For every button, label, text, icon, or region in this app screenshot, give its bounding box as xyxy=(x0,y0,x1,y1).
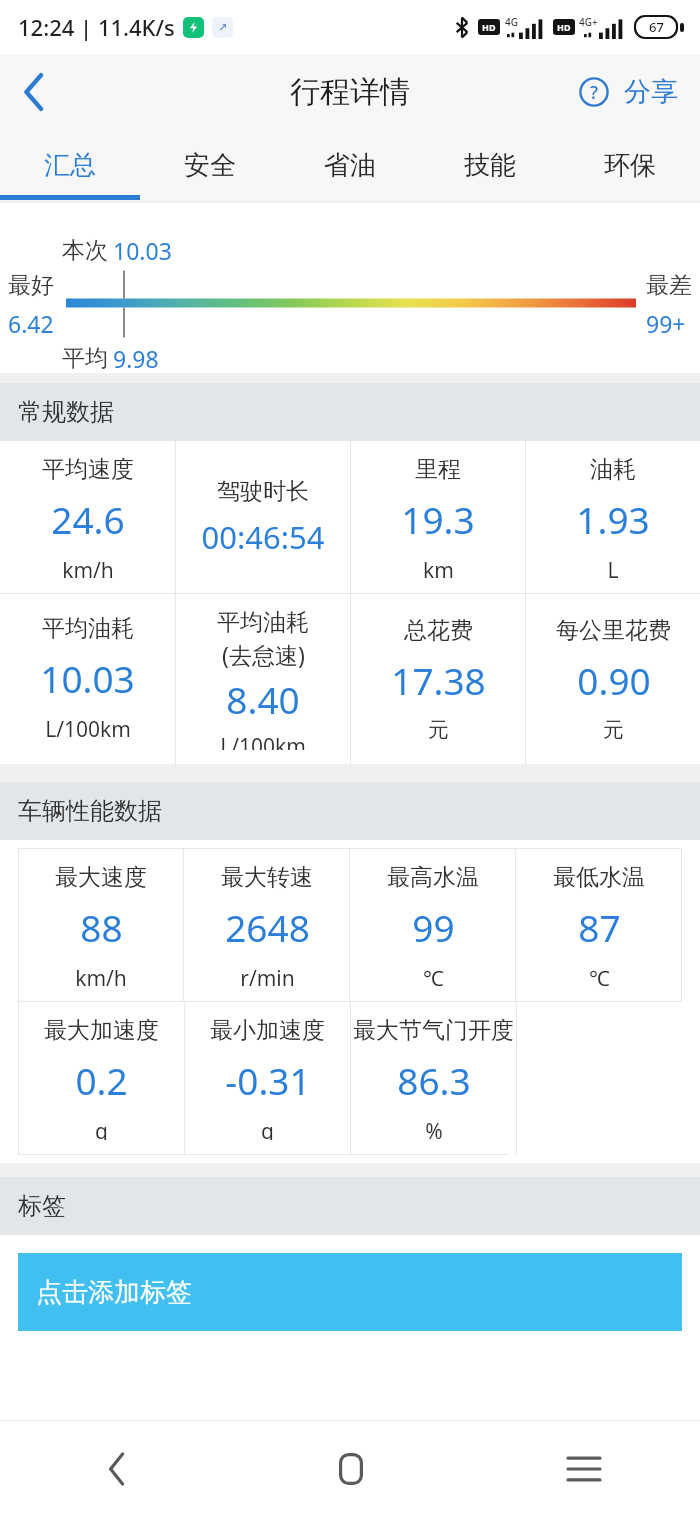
staticText: ? xyxy=(590,80,599,105)
staticText: 车辆性能数据 xyxy=(18,796,162,826)
staticText: 标签 xyxy=(18,1191,66,1221)
staticText: g xyxy=(261,1117,274,1140)
staticText: 0.90 xyxy=(577,655,651,705)
staticText: g xyxy=(95,1117,108,1140)
staticText: 油耗 xyxy=(590,455,636,484)
button[interactable]: 油耗 xyxy=(526,441,700,593)
staticText: 2648 xyxy=(225,902,310,952)
staticText: 环保 xyxy=(604,149,656,182)
staticText: (去怠速) xyxy=(222,639,305,670)
staticText: 67 xyxy=(649,18,664,36)
staticText: 10.03 xyxy=(113,235,172,266)
staticText: 分享 xyxy=(624,75,678,109)
staticText: 4G+ xyxy=(579,15,598,29)
staticText: HD xyxy=(557,21,571,33)
button[interactable]: 最大节气门开度 xyxy=(351,1002,516,1154)
staticText: 10.03 xyxy=(40,653,135,703)
button[interactable]: 最低水温 xyxy=(516,849,681,1001)
staticText: 87 xyxy=(578,902,621,952)
staticText: 8.40 xyxy=(226,674,300,724)
staticText: 每公里花费 xyxy=(556,616,671,645)
staticText: 00:46:54 xyxy=(201,516,325,558)
staticText: 行程详情 xyxy=(290,73,410,111)
staticText: km xyxy=(423,556,454,579)
staticText: 平均速度 xyxy=(42,455,134,484)
button[interactable]: 返回 xyxy=(0,1421,234,1516)
staticText: 点击添加标签 xyxy=(36,1276,192,1309)
staticText: 安全 xyxy=(184,149,236,182)
staticText: 平均油耗 xyxy=(217,608,309,637)
staticText: 元 xyxy=(428,717,449,743)
staticText: 最大加速度 xyxy=(44,1016,159,1045)
staticText: 86.3 xyxy=(397,1055,471,1105)
staticText: % xyxy=(425,1117,443,1140)
button[interactable]: 环保 xyxy=(560,130,700,200)
button[interactable]: 主页 xyxy=(234,1421,467,1516)
staticText: 最高水温 xyxy=(387,863,479,892)
staticText: 19.3 xyxy=(401,494,475,544)
staticText: ↗ xyxy=(218,21,228,34)
button[interactable]: 安全 xyxy=(140,130,280,200)
button[interactable]: 最大加速度 xyxy=(19,1002,184,1154)
staticText: 9.98 xyxy=(113,343,159,374)
button[interactable]: 最高水温 xyxy=(350,849,515,1001)
staticText: 12:24 | 11.4K/s xyxy=(18,12,175,42)
staticText: 最差 xyxy=(646,271,692,300)
staticText: 最低水温 xyxy=(553,863,645,892)
staticText: 最大速度 xyxy=(55,863,147,892)
staticText: 24.6 xyxy=(51,494,125,544)
button[interactable]: 技能 xyxy=(420,130,560,200)
staticText: 常规数据 xyxy=(18,397,114,427)
button[interactable]: 省油 xyxy=(280,130,420,200)
staticText: L/100km xyxy=(220,732,306,750)
staticText: 元 xyxy=(603,717,624,743)
button[interactable]: 驾驶时长 xyxy=(176,441,350,593)
button[interactable]: 最小加速度 xyxy=(185,1002,350,1154)
button[interactable]: 平均速度 xyxy=(0,441,175,593)
staticText: 技能 xyxy=(464,149,516,182)
button[interactable]: 最近任务 xyxy=(467,1421,700,1516)
staticText: 1.93 xyxy=(576,494,650,544)
staticText: 总花费 xyxy=(404,616,473,645)
button[interactable]: 最大转速 xyxy=(184,849,349,1001)
button[interactable]: 最大速度 xyxy=(19,849,183,1001)
button[interactable]: 平均油耗 xyxy=(176,594,350,764)
staticText: 最好 xyxy=(8,271,54,300)
staticText: 88 xyxy=(80,902,123,952)
button[interactable]: 平均油耗 xyxy=(0,594,175,764)
button[interactable]: 每公里花费 xyxy=(526,594,700,764)
staticText: HD xyxy=(482,21,496,33)
staticText: 最大转速 xyxy=(221,863,313,892)
button[interactable]: 帮助 xyxy=(572,70,616,114)
staticText: 驾驶时长 xyxy=(217,477,309,506)
staticText: 本次 xyxy=(62,236,108,265)
staticText: 省油 xyxy=(324,149,376,182)
staticText: L/100km xyxy=(45,715,131,744)
staticText: 最小加速度 xyxy=(210,1016,325,1045)
staticText: 99+ xyxy=(646,308,686,339)
staticText: 6.42 xyxy=(8,308,54,339)
button[interactable]: 里程 xyxy=(351,441,525,593)
staticText: r/min xyxy=(240,964,295,987)
button[interactable]: 返回 xyxy=(0,54,68,130)
staticText: km/h xyxy=(75,964,127,987)
staticText: 平均 xyxy=(62,344,108,373)
button[interactable]: 点击添加标签 xyxy=(18,1253,682,1331)
button[interactable]: 汇总 xyxy=(0,130,140,200)
staticText: ℃ xyxy=(589,964,610,987)
staticText: 99 xyxy=(412,902,455,952)
staticText: -0.31 xyxy=(225,1055,311,1105)
staticText: 汇总 xyxy=(44,149,96,182)
staticText: 里程 xyxy=(415,455,461,484)
staticText: 4G xyxy=(505,15,518,29)
button[interactable]: 总花费 xyxy=(351,594,525,764)
staticText: 0.2 xyxy=(75,1055,128,1105)
staticText: 最大节气门开度 xyxy=(353,1016,514,1045)
staticText: L xyxy=(607,556,619,579)
staticText: km/h xyxy=(62,556,114,579)
button[interactable]: 分享 xyxy=(620,67,682,117)
staticText: 平均油耗 xyxy=(42,614,134,643)
staticText: 17.38 xyxy=(391,655,486,705)
staticText: ℃ xyxy=(423,964,444,987)
